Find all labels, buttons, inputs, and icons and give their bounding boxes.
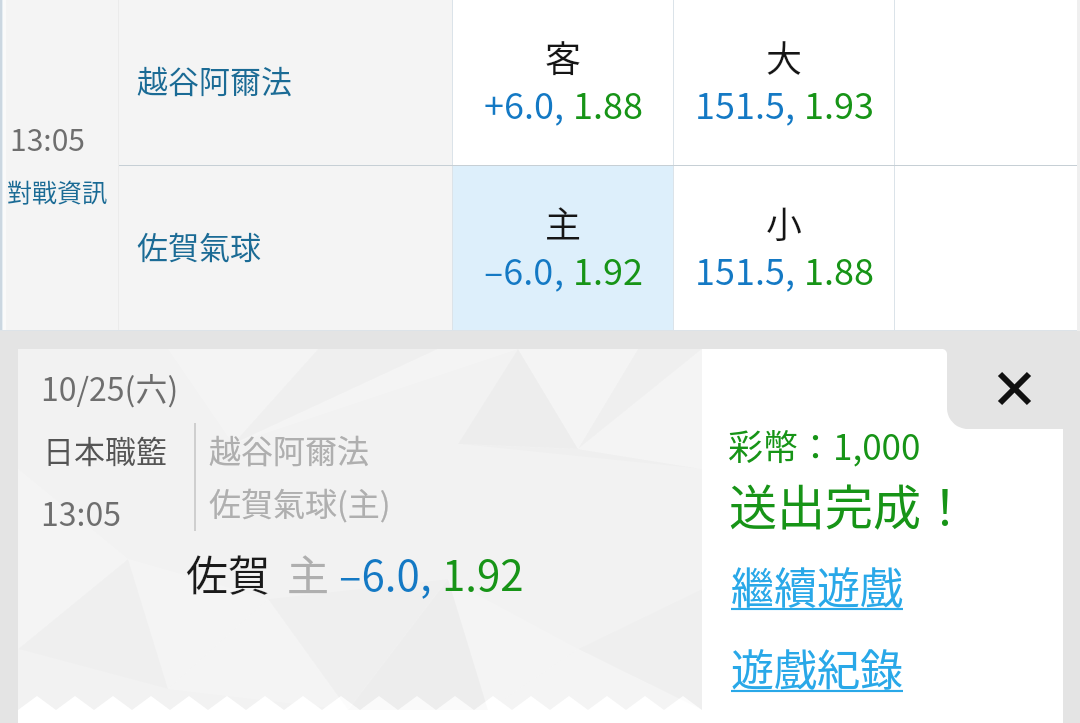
staticText: 1.92 — [442, 542, 524, 603]
staticText: +6.0 — [484, 77, 554, 129]
staticText: 151.5 — [695, 77, 785, 129]
staticText: 主 — [287, 542, 330, 603]
staticText: –6.0 — [484, 243, 554, 295]
button[interactable]: 大 — [674, 0, 895, 165]
staticText: 1.88 — [804, 243, 874, 295]
staticText: 13:05 — [41, 489, 121, 535]
staticText: 送出完成！ — [729, 469, 970, 539]
button[interactable]: 繼續遊戲 — [731, 554, 905, 614]
staticText: –6.0 — [339, 542, 420, 603]
staticText: , — [420, 542, 442, 603]
staticText: 佐賀氣球(主) — [209, 479, 391, 525]
staticText: 10/25(六) — [41, 364, 179, 410]
staticText: 繼續遊戲 — [731, 554, 903, 614]
button[interactable]: 客 — [452, 0, 674, 165]
staticText: 小 — [766, 196, 803, 248]
staticText: , — [785, 77, 804, 129]
staticText: 1.93 — [804, 77, 874, 129]
staticText: , — [554, 77, 573, 129]
staticText: 151.5 — [695, 243, 785, 295]
staticText: 越谷阿爾法 — [209, 426, 370, 472]
staticText: , — [554, 243, 573, 295]
button[interactable]: 主 — [452, 166, 674, 331]
staticText: 佐賀 — [186, 542, 271, 603]
staticText: 日本職籃 — [43, 427, 167, 472]
staticText: 大 — [766, 30, 803, 82]
button[interactable]: Close — [948, 349, 1063, 429]
staticText: 對戰資訊 — [7, 173, 108, 209]
button[interactable]: 13:05 — [6, 0, 118, 331]
staticText: 佐賀氣球 — [137, 223, 261, 268]
staticText: 遊戲紀錄 — [731, 636, 903, 696]
button[interactable]: 小 — [674, 166, 895, 331]
staticText: 客 — [545, 30, 582, 82]
button[interactable]: 遊戲紀錄 — [731, 636, 905, 696]
staticText: , — [785, 243, 804, 295]
staticText: 主 — [545, 196, 582, 248]
staticText: 彩幣：1,000 — [728, 419, 921, 470]
staticText: 1.88 — [573, 77, 643, 129]
staticText: 1.92 — [573, 243, 643, 295]
staticText: 越谷阿爾法 — [137, 57, 292, 102]
staticText: 13:05 — [10, 116, 85, 159]
